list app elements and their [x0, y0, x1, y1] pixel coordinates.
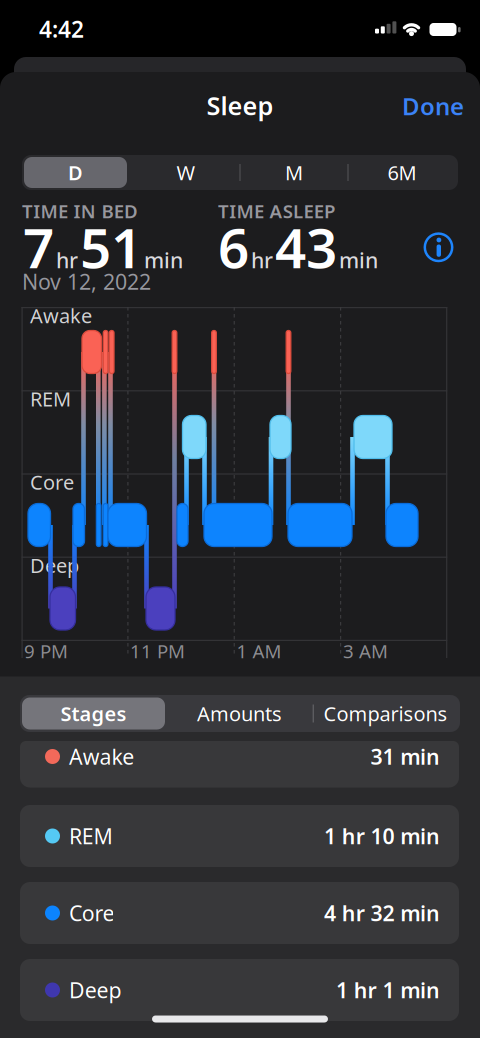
staticText: Done: [402, 90, 464, 122]
button[interactable]: M: [241, 155, 346, 190]
staticText: 1 hr 1 min: [336, 976, 440, 1004]
staticText: 1 hr 10 min: [324, 822, 440, 850]
button[interactable]: W: [133, 155, 238, 190]
staticText: 6M: [387, 159, 416, 186]
staticText: M: [285, 159, 303, 186]
staticText: REM: [69, 822, 113, 850]
button[interactable]: Deep: [20, 959, 459, 1021]
staticText: Awake: [30, 302, 92, 329]
staticText: Core: [69, 899, 114, 927]
staticText: TIME IN BED: [22, 199, 138, 223]
staticText: 11 PM: [130, 639, 185, 663]
button[interactable]: Done: [402, 90, 464, 122]
staticText: Core: [30, 469, 74, 495]
staticText: D: [68, 159, 83, 186]
staticText: TIME ASLEEP: [218, 199, 335, 223]
staticText: Deep: [30, 552, 79, 579]
staticText: min: [144, 246, 183, 274]
button[interactable]: Amounts: [168, 695, 311, 732]
staticText: 3 AM: [343, 639, 388, 663]
staticText: 31 min: [370, 742, 440, 771]
button[interactable]: D: [23, 155, 128, 190]
staticText: 51: [80, 211, 142, 283]
staticText: 4 hr 32 min: [324, 899, 440, 927]
staticText: Awake: [69, 742, 134, 771]
staticText: Sleep: [206, 89, 273, 122]
staticText: Nov 12, 2022: [22, 267, 151, 296]
staticText: 4:42: [39, 14, 84, 44]
button[interactable]: Awake: [20, 733, 459, 779]
staticText: Deep: [69, 976, 121, 1004]
button[interactable]: Core: [20, 882, 459, 944]
staticText: 9 PM: [24, 639, 68, 663]
button[interactable]: 6M: [349, 155, 454, 190]
staticText: 7: [23, 211, 54, 283]
staticText: W: [176, 159, 195, 186]
staticText: hr: [56, 246, 78, 274]
staticText: 6: [218, 211, 249, 283]
button[interactable]: Comparisons: [314, 695, 457, 732]
staticText: hr: [251, 246, 273, 274]
staticText: Comparisons: [323, 700, 447, 727]
staticText: 43: [275, 211, 337, 283]
button[interactable]: [421, 230, 455, 264]
button[interactable]: Stages: [22, 695, 165, 732]
staticText: Amounts: [197, 700, 282, 727]
staticText: REM: [30, 385, 71, 412]
staticText: 1 AM: [236, 639, 281, 663]
staticText: Stages: [60, 700, 126, 727]
staticText: min: [339, 246, 378, 274]
button[interactable]: REM: [20, 805, 459, 867]
